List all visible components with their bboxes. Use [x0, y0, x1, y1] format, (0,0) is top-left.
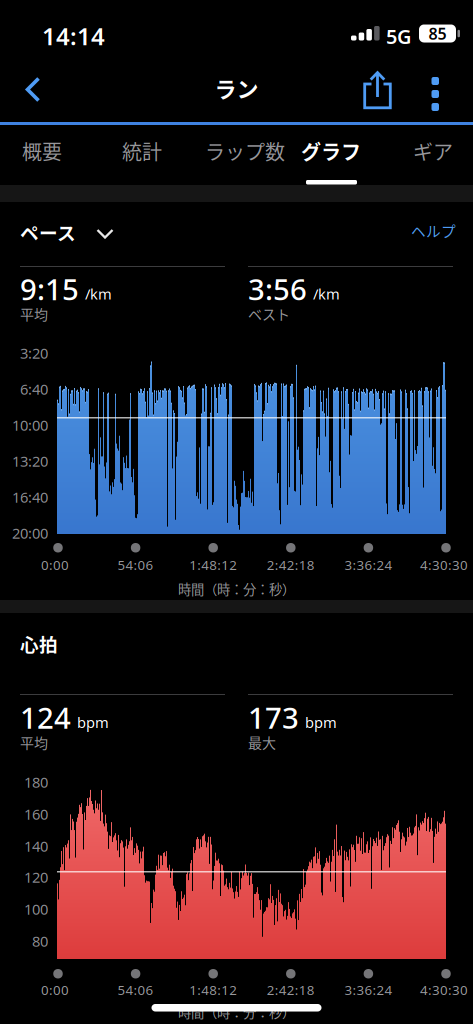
staticText: 14:14 — [42, 20, 105, 52]
staticText: 最大 — [248, 732, 276, 752]
staticText: 120 — [24, 867, 48, 887]
staticText: 0:00 — [41, 556, 69, 574]
staticText: ギア — [413, 136, 453, 165]
staticText: bpm — [77, 712, 109, 732]
staticText: 13:20 — [12, 451, 48, 471]
staticText: ラン — [214, 72, 258, 104]
staticText: /km — [85, 284, 112, 303]
button[interactable]: 統計 — [122, 132, 162, 169]
staticText: グラフ — [301, 136, 361, 165]
button[interactable]: 概要 — [22, 132, 62, 169]
staticText: 平均 — [20, 732, 48, 752]
staticText: 54:06 — [118, 981, 154, 999]
staticText: 時間（時：分：秒） — [178, 1002, 295, 1021]
staticText: 6:40 — [20, 379, 48, 399]
button[interactable]: Share — [363, 71, 391, 109]
staticText: 0:00 — [41, 981, 69, 999]
staticText: 140 — [24, 836, 48, 856]
staticText: 心拍 — [20, 630, 58, 657]
staticText: 20:00 — [12, 523, 48, 543]
staticText: 時間（時：分：秒） — [178, 579, 295, 598]
staticText: 2:42:18 — [267, 981, 315, 999]
button[interactable]: More — [425, 71, 445, 117]
staticText: 1:48:12 — [189, 556, 237, 574]
staticText: 3:56 — [248, 269, 307, 308]
staticText: ラップ数 — [205, 136, 285, 165]
button[interactable]: Back — [0, 67, 40, 112]
staticText: ベスト — [248, 303, 290, 324]
staticText: 9:15 — [20, 269, 79, 308]
staticText: 4:30:30 — [420, 556, 468, 574]
staticText: 4:30:30 — [420, 981, 468, 999]
staticText: 平均 — [20, 303, 48, 324]
staticText: 100 — [24, 899, 48, 919]
staticText: 2:42:18 — [267, 556, 315, 574]
staticText: 173 — [248, 698, 299, 737]
staticText: 3:20 — [20, 343, 48, 363]
staticText: ヘルプ — [411, 220, 456, 241]
button[interactable]: グラフ — [301, 132, 361, 169]
button[interactable]: ラップ数 — [205, 132, 285, 169]
staticText: 統計 — [122, 136, 162, 165]
staticText: 3:36:24 — [344, 556, 392, 574]
staticText: 10:00 — [12, 415, 48, 435]
button[interactable]: ギア — [413, 132, 453, 169]
staticText: 16:40 — [12, 487, 48, 507]
button[interactable]: ペース — [20, 218, 113, 245]
staticText: bpm — [305, 712, 337, 732]
staticText: 160 — [24, 804, 48, 824]
staticText: 54:06 — [118, 556, 154, 574]
staticText: 3:36:24 — [344, 981, 392, 999]
staticText: 180 — [24, 772, 48, 792]
staticText: 1:48:12 — [189, 981, 237, 999]
staticText: 80 — [32, 931, 48, 951]
staticText: 概要 — [22, 136, 62, 165]
staticText: 85 — [428, 23, 446, 44]
button[interactable]: ヘルプ — [411, 220, 456, 241]
staticText: ペース — [20, 218, 76, 245]
staticText: 5G — [386, 23, 412, 50]
staticText: /km — [313, 284, 340, 303]
staticText: 124 — [20, 698, 71, 737]
